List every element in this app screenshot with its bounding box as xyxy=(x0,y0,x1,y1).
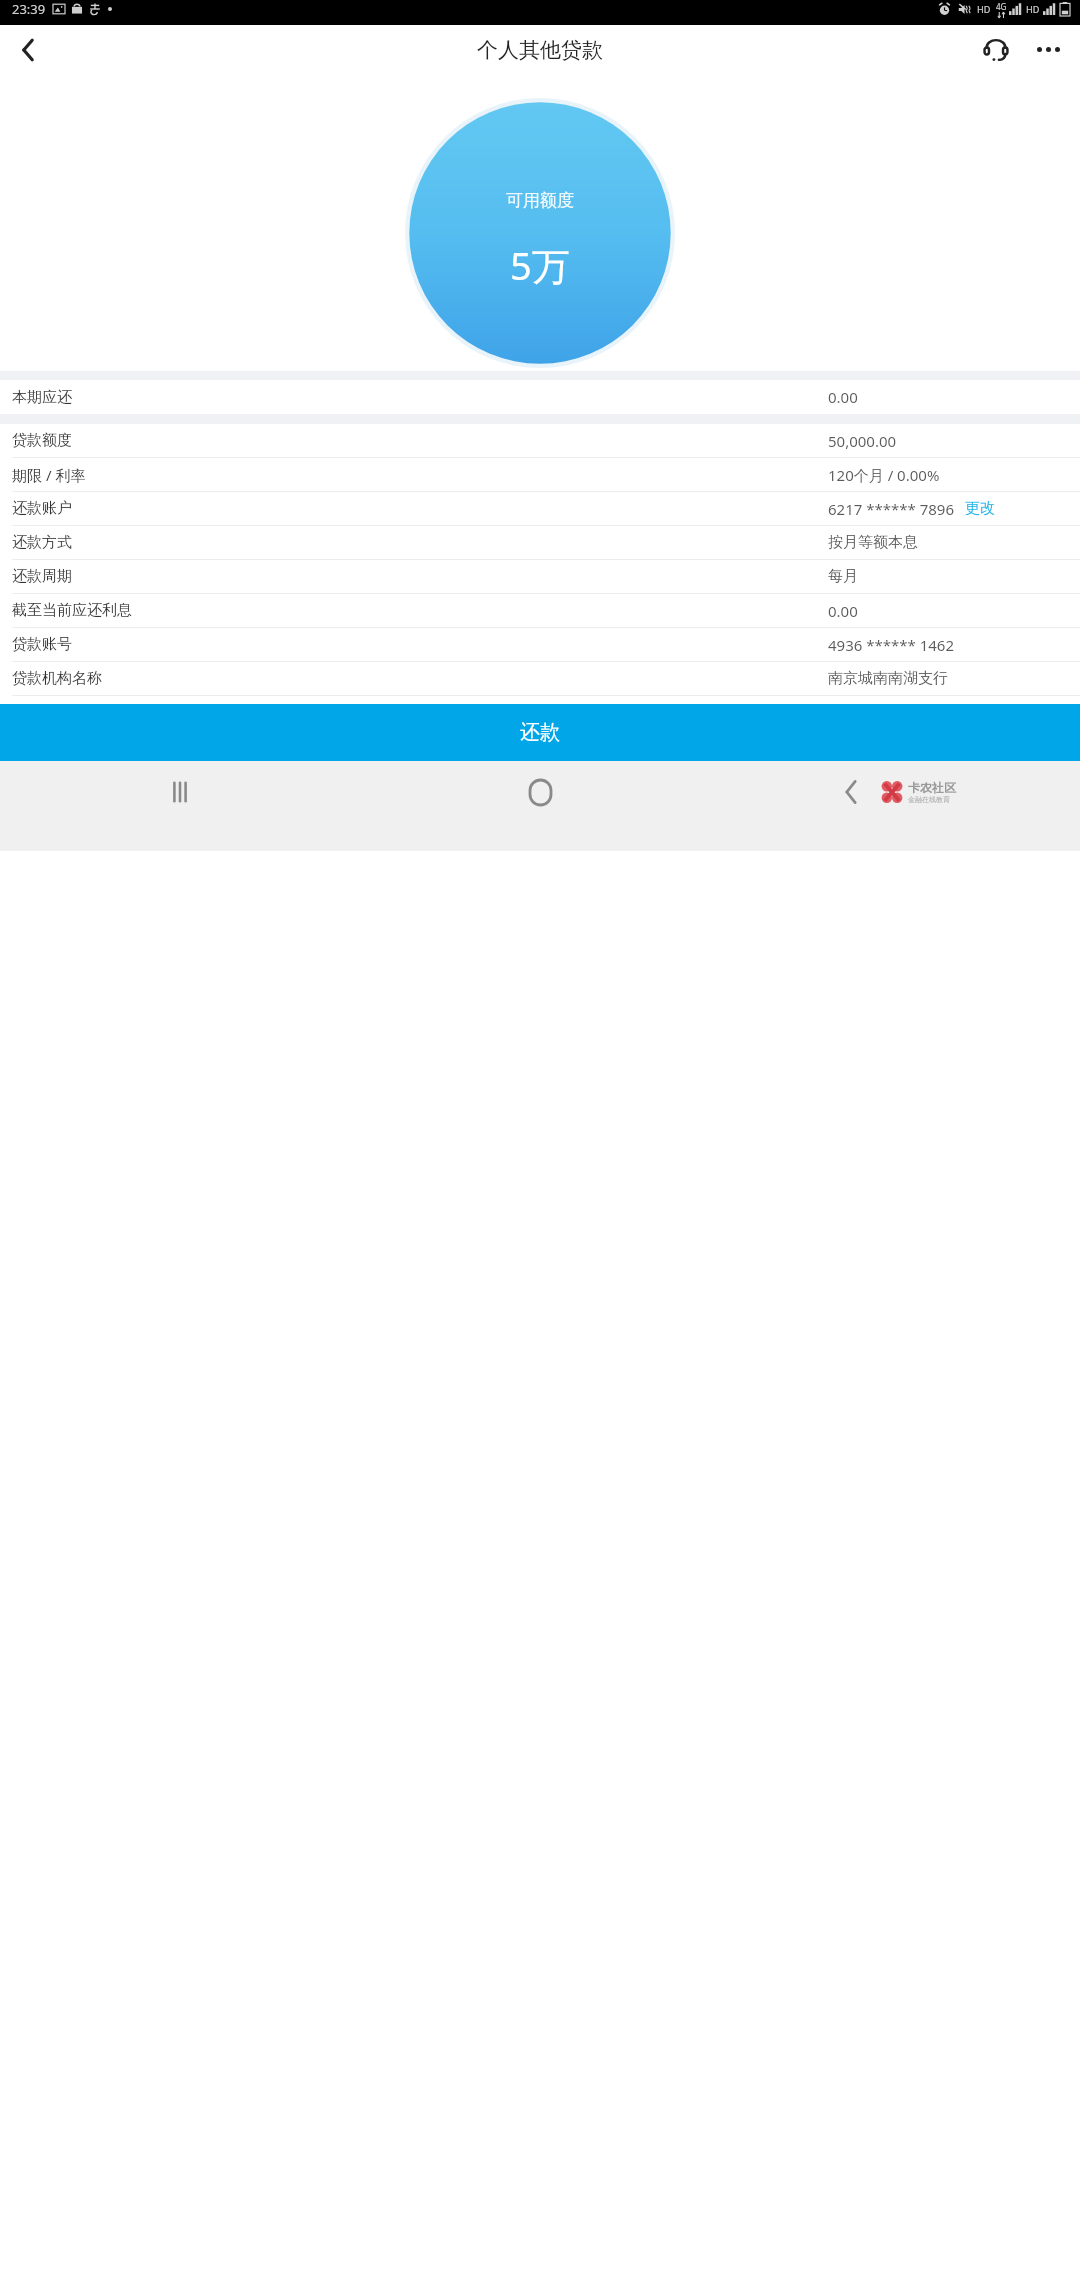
button[interactable]: 贷款机构名称 xyxy=(0,662,1080,695)
staticText: HD xyxy=(1026,3,1040,15)
button[interactable]: Back xyxy=(720,761,1080,823)
button[interactable]: 还款方式 xyxy=(0,526,1080,559)
button[interactable]: 还款 xyxy=(0,704,1080,761)
staticText: 还款账户 xyxy=(12,499,72,518)
staticText: 还款周期 xyxy=(12,567,72,586)
button[interactable]: Recent apps xyxy=(0,761,360,823)
staticText: 卡农社区 xyxy=(908,780,956,795)
staticText: 贷款账号 xyxy=(12,635,72,654)
staticText: 4936 ****** 1462 xyxy=(828,635,955,655)
staticText: 金融在线教育 xyxy=(908,795,950,804)
staticText: 截至当前应还利息 xyxy=(12,601,132,620)
button[interactable]: Back xyxy=(0,25,56,74)
button[interactable]: 期限 / 利率 xyxy=(0,458,1080,491)
staticText: 个人其他贷款 xyxy=(477,37,603,63)
staticText: HD xyxy=(977,3,991,15)
staticText: 23:39 xyxy=(12,0,46,18)
staticText: 本期应还 xyxy=(12,388,72,407)
staticText: 5万 xyxy=(510,239,570,291)
button[interactable]: 还款账户 xyxy=(0,492,1080,525)
button[interactable]: 更改 xyxy=(963,497,997,520)
staticText: 6217 ****** 7896 xyxy=(828,499,955,519)
staticText: 0.00 xyxy=(828,601,858,621)
button[interactable]: More options xyxy=(1022,25,1074,74)
staticText: 120个月 / 0.00% xyxy=(828,465,940,485)
staticText: 期限 / 利率 xyxy=(12,465,86,485)
staticText: 4G xyxy=(996,1,1007,12)
button[interactable]: 贷款账号 xyxy=(0,628,1080,661)
staticText: 更改 xyxy=(965,499,995,518)
staticText: 贷款机构名称 xyxy=(12,669,102,688)
staticText: 0.00 xyxy=(828,387,858,407)
staticText: 还款 xyxy=(520,720,560,745)
staticText: 50,000.00 xyxy=(828,431,897,451)
staticText: 按月等额本息 xyxy=(828,533,918,552)
staticText: 每月 xyxy=(828,567,858,586)
button[interactable]: 本期应还 xyxy=(0,380,1080,414)
staticText: 可用额度 xyxy=(506,190,574,211)
button[interactable]: Home xyxy=(360,761,720,823)
button[interactable]: 还款周期 xyxy=(0,560,1080,593)
staticText: 南京城南南湖支行 xyxy=(828,669,948,688)
staticText: 还款方式 xyxy=(12,533,72,552)
button[interactable]: 贷款额度 xyxy=(0,424,1080,457)
button[interactable]: 截至当前应还利息 xyxy=(0,594,1080,627)
button[interactable]: Customer service xyxy=(970,25,1022,74)
staticText: 贷款额度 xyxy=(12,431,72,450)
